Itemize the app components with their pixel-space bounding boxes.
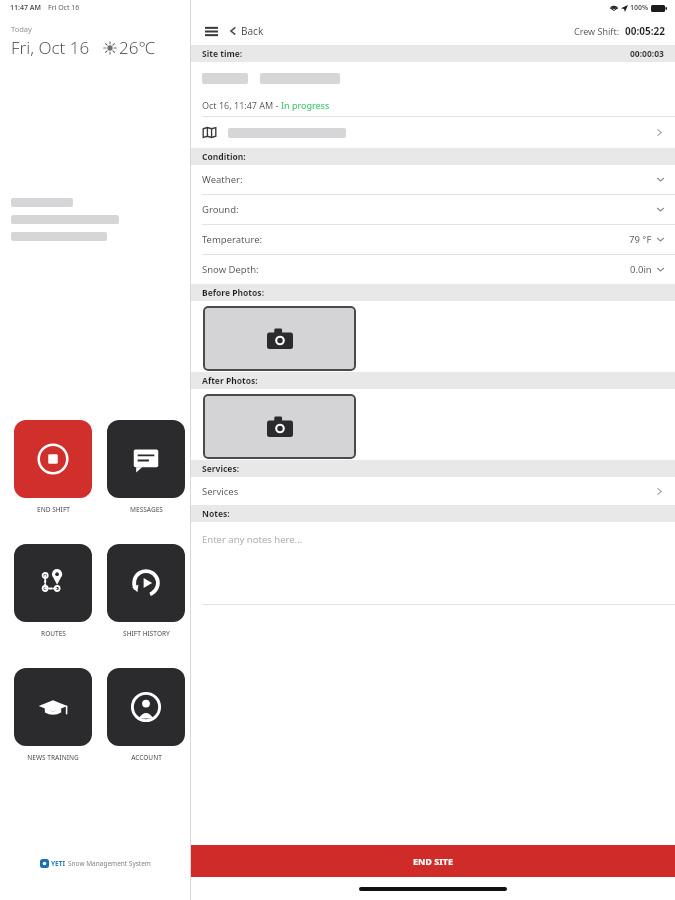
staticText: 79 °F <box>629 233 652 246</box>
staticText: 00:00:03 <box>630 48 664 60</box>
staticText: Fri, Oct 16 <box>11 36 90 59</box>
button[interactable] <box>14 420 92 498</box>
staticText: END SITE <box>413 855 453 867</box>
staticText: ACCOUNT <box>131 753 162 762</box>
button[interactable]: Back <box>229 24 264 38</box>
staticText: 26℃ <box>119 36 156 59</box>
button[interactable]: Services <box>191 477 675 505</box>
staticText: Today <box>11 24 32 34</box>
button[interactable]: Add after photo <box>203 394 356 459</box>
staticText: Back <box>241 24 264 38</box>
staticText: In progress <box>281 99 330 111</box>
button[interactable]: Enter any notes here... <box>191 522 675 604</box>
staticText: SHIFT HISTORY <box>123 629 170 638</box>
staticText: Site time: <box>202 48 243 60</box>
staticText: 0.0in <box>630 263 652 276</box>
staticText: Before Photos: <box>202 287 265 299</box>
staticText: Weather: <box>202 173 243 186</box>
staticText: Oct 16, 11:47 AM - <box>202 99 281 111</box>
button[interactable]: Snow Depth: <box>191 255 675 284</box>
staticText: Services <box>202 485 239 498</box>
staticText: NEWS TRAINING <box>27 753 79 762</box>
button[interactable] <box>14 544 92 622</box>
staticText: Snow Management System <box>68 859 151 868</box>
staticText: Ground: <box>202 203 239 216</box>
staticText: Temperature: <box>202 233 263 246</box>
staticText: Condition: <box>202 151 246 163</box>
staticText: END SHIFT <box>37 505 70 514</box>
button[interactable] <box>191 117 675 148</box>
button[interactable]: Add before photo <box>203 306 356 371</box>
staticText: After Photos: <box>202 375 258 387</box>
staticText: MESSAGES <box>130 505 163 514</box>
button[interactable]: Weather: <box>191 165 675 194</box>
staticText: Notes: <box>202 508 230 520</box>
staticText: Crew Shift: <box>574 25 620 37</box>
staticText: 11:47 AM <box>10 3 41 13</box>
staticText: 100% <box>630 3 649 13</box>
staticText: Fri Oct 16 <box>48 3 80 13</box>
button[interactable]: Temperature: <box>191 225 675 254</box>
staticText: YETI <box>51 859 65 868</box>
button[interactable] <box>107 668 185 746</box>
staticText: 00:05:22 <box>625 24 665 38</box>
staticText: Enter any notes here... <box>202 533 303 546</box>
staticText: ROUTES <box>41 629 66 638</box>
button[interactable] <box>107 544 185 622</box>
button[interactable] <box>107 420 185 498</box>
button[interactable]: END SITE <box>191 845 675 877</box>
button[interactable] <box>14 668 92 746</box>
button[interactable]: Ground: <box>191 195 675 224</box>
staticText: Snow Depth: <box>202 263 259 276</box>
staticText: Services: <box>202 463 240 475</box>
button[interactable]: Menu <box>201 21 221 41</box>
